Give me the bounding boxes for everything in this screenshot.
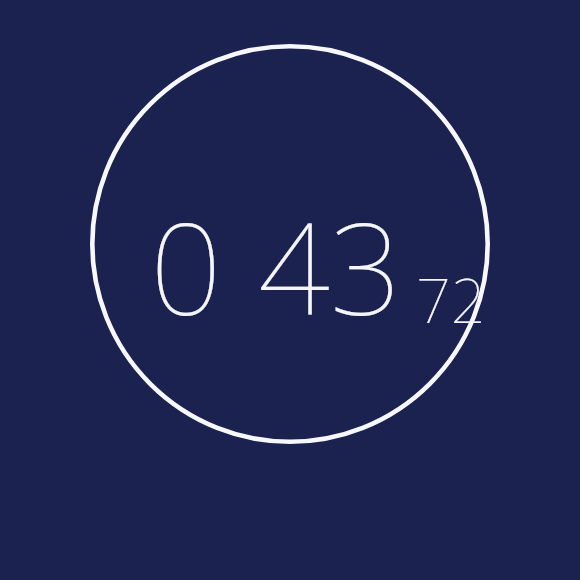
staticText: 0	[150, 180, 222, 352]
button[interactable]: Elapsed time 0 minutes 43.72 seconds	[150, 180, 486, 352]
staticText: 72	[416, 258, 486, 341]
staticText: 43	[258, 180, 402, 352]
button[interactable]: Stopwatch progress ring	[90, 44, 490, 444]
